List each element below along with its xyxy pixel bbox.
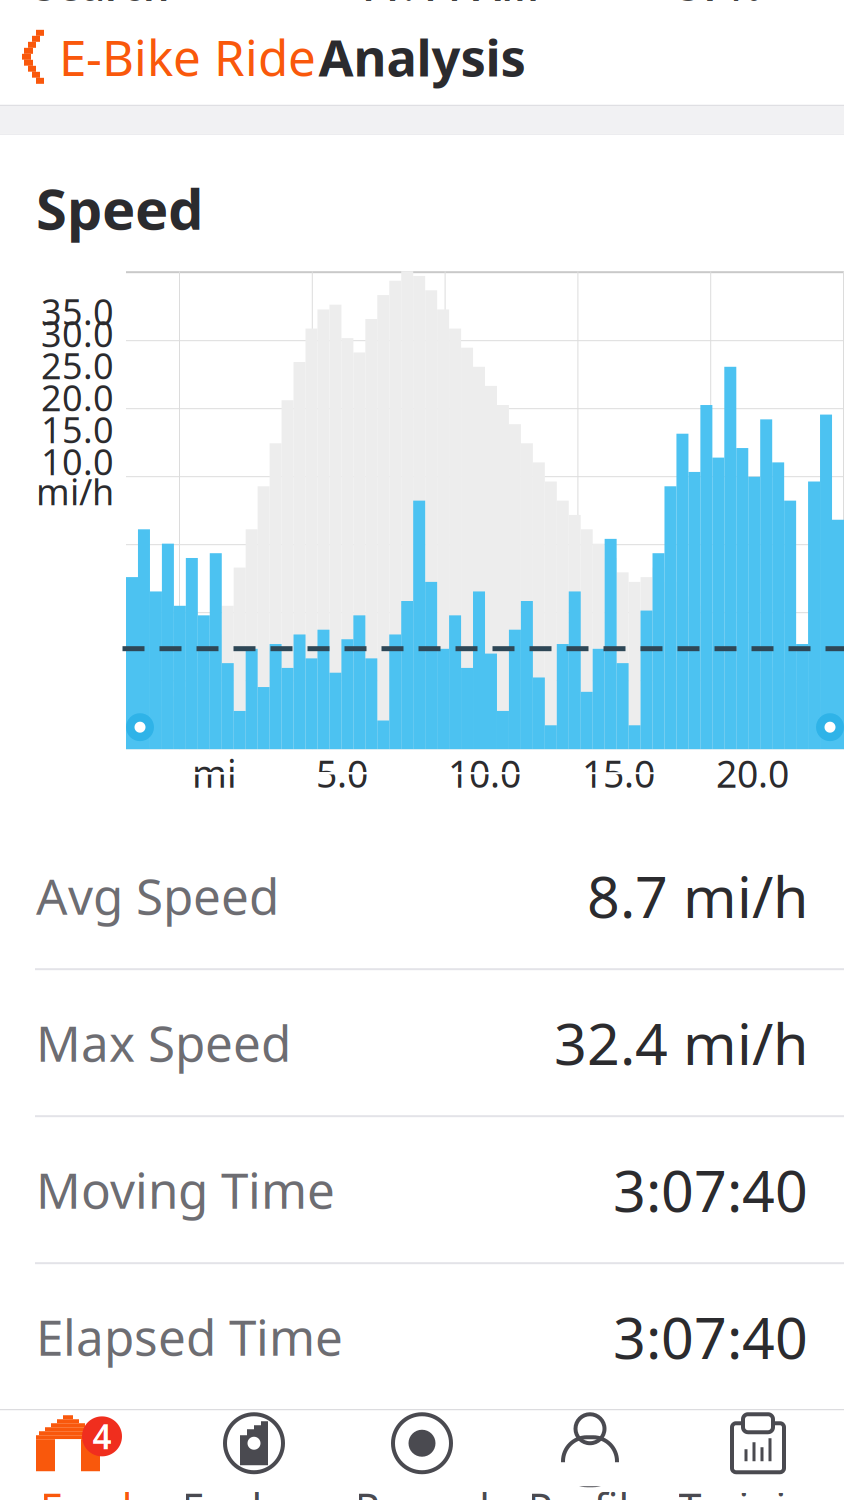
button[interactable]: 4 (2, 1410, 170, 1500)
button[interactable]: Explore (170, 1410, 338, 1500)
button[interactable]: Max Speed (0, 970, 844, 1115)
button[interactable]: Avg Speed (0, 823, 844, 968)
staticText: Analysis (318, 23, 525, 90)
staticText: Moving Time (36, 1157, 335, 1222)
staticText: 11:44 AM (355, 0, 539, 12)
staticText: Elapsed Time (36, 1304, 343, 1369)
staticText: 4 (92, 1414, 111, 1458)
staticText: 57% (678, 0, 762, 12)
button[interactable]: Record (338, 1410, 506, 1500)
staticText: 32.4 mi/h (554, 1005, 808, 1081)
staticText: 10.0 (41, 437, 114, 485)
staticText: 20.0 (41, 373, 114, 421)
staticText: 35.0 (41, 287, 114, 335)
staticText: E-Bike Ride (59, 24, 316, 90)
staticText: Max Speed (36, 1010, 291, 1075)
staticText: Profile (527, 1480, 652, 1500)
button[interactable]: Training (674, 1410, 842, 1500)
staticText: Explore (181, 1480, 326, 1500)
staticText: 3:07:40 (613, 1299, 808, 1375)
staticText: Search (34, 0, 169, 12)
staticText: 25.0 (41, 341, 114, 389)
staticText: Record (354, 1480, 489, 1500)
staticText: 8.7 mi/h (587, 858, 808, 934)
staticText: 20.0 (716, 748, 789, 798)
staticText: 5.0 (316, 748, 368, 798)
staticText: 3:07:40 (613, 1152, 808, 1228)
staticText: 10.0 (448, 748, 521, 798)
button[interactable]: Profile (506, 1410, 674, 1500)
button[interactable]: Moving Time (0, 1117, 844, 1262)
staticText: mi/h (36, 467, 114, 515)
staticText: Feed (40, 1480, 132, 1500)
button[interactable]: E-Bike Ride (0, 10, 334, 104)
staticText: Speed (36, 171, 203, 245)
staticText: Avg Speed (36, 863, 279, 928)
staticText: 30.0 (41, 309, 114, 357)
staticText: mi (192, 748, 237, 798)
staticText: Training (678, 1480, 837, 1500)
staticText: 15.0 (582, 748, 655, 798)
staticText: 15.0 (41, 405, 114, 453)
button[interactable]: Elapsed Time (0, 1264, 844, 1409)
